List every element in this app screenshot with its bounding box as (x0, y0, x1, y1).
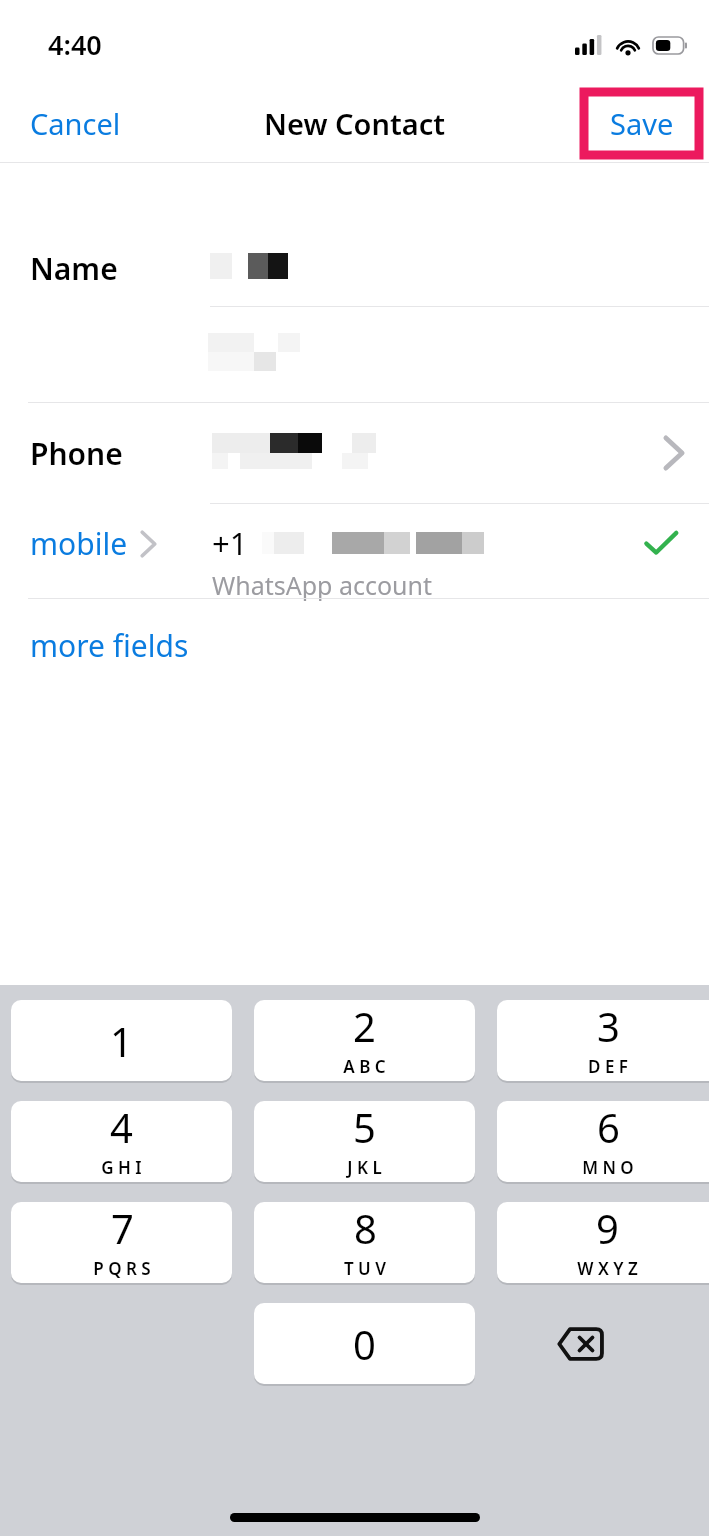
button[interactable]: Cancel (0, 94, 151, 153)
button[interactable]: Delete (549, 1321, 611, 1367)
button[interactable]: 5 (254, 1101, 475, 1182)
staticText: P Q R S (93, 1257, 151, 1280)
other: Verified (644, 529, 678, 557)
button[interactable]: 0 (254, 1303, 475, 1384)
staticText: 5 (353, 1101, 376, 1154)
staticText: 2 (353, 1000, 376, 1053)
staticText: 7 (111, 1202, 134, 1255)
button[interactable]: 9 (497, 1202, 709, 1283)
staticText: 1 (110, 1014, 133, 1068)
staticText: 9 (596, 1202, 619, 1255)
staticText: 3 (597, 1000, 620, 1053)
button[interactable]: 7 (11, 1202, 232, 1283)
staticText: mobile (30, 523, 128, 564)
staticText: +1 (212, 522, 248, 564)
staticText: J K L (347, 1156, 382, 1179)
staticText: WhatsApp account (212, 568, 433, 602)
button[interactable]: 6 (497, 1101, 709, 1182)
button[interactable]: Name (0, 230, 709, 306)
button[interactable]: 3 (497, 1000, 709, 1081)
staticText: G H I (101, 1156, 142, 1179)
staticText: New Contact (264, 104, 445, 143)
staticText: M N O (582, 1156, 634, 1179)
staticText: more fields (30, 625, 189, 666)
button[interactable]: 1 (11, 1000, 232, 1081)
staticText: Name (30, 248, 118, 289)
button[interactable]: 8 (254, 1202, 475, 1283)
button[interactable]: more fields (0, 599, 709, 691)
staticText: 4:40 (48, 26, 102, 63)
staticText: 8 (354, 1202, 377, 1255)
staticText: W X Y Z (577, 1257, 638, 1280)
staticText: 0 (353, 1317, 376, 1371)
other: Open phone field (663, 435, 685, 471)
staticText: D E F (588, 1055, 628, 1078)
button[interactable]: Phone (0, 403, 709, 503)
button[interactable]: 2 (254, 1000, 475, 1081)
button[interactable]: Save (584, 92, 699, 155)
staticText: 6 (597, 1101, 620, 1154)
staticText: Save (610, 104, 674, 143)
staticText: A B C (343, 1055, 386, 1078)
button[interactable]: 4 (11, 1101, 232, 1182)
staticText: Cancel (30, 104, 121, 143)
staticText: T U V (344, 1257, 386, 1280)
button[interactable]: mobile (0, 504, 709, 598)
staticText: Phone (30, 433, 123, 474)
staticText: 4 (110, 1101, 133, 1154)
